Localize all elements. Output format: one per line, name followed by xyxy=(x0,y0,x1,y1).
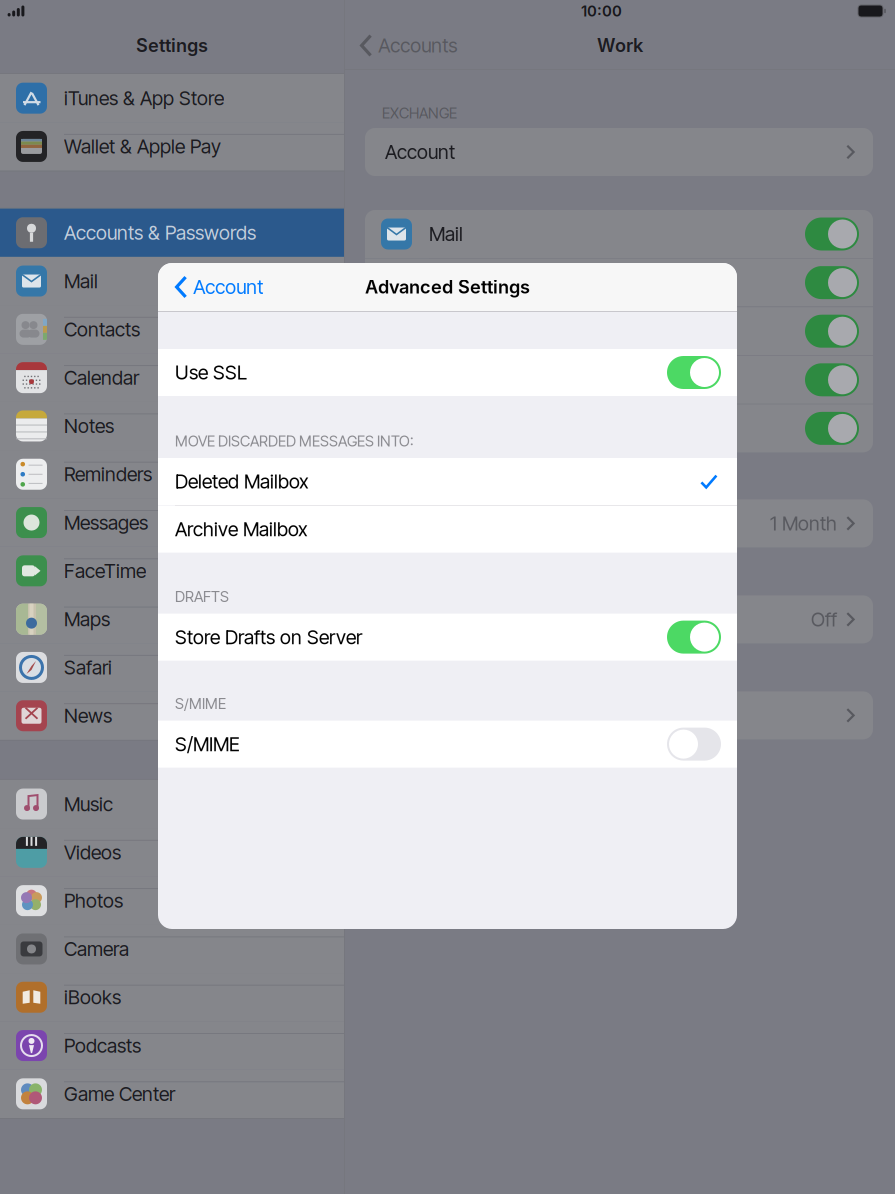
staticText: S/MIME xyxy=(175,695,226,713)
staticText: Videos xyxy=(64,841,121,864)
staticText: 1 Month xyxy=(770,512,837,535)
staticText: S/MIME xyxy=(175,732,240,756)
staticText: Notes xyxy=(64,414,114,438)
staticText: Contacts xyxy=(429,271,505,294)
button[interactable]: Deleted Mailbox xyxy=(158,458,737,505)
staticText: Maps xyxy=(64,607,110,631)
button[interactable]: Calendar xyxy=(0,353,344,402)
staticText: Settings xyxy=(136,34,208,56)
button[interactable]: Camera xyxy=(0,925,344,973)
button[interactable]: Wallet & Apple Pay xyxy=(0,122,344,171)
staticText: Off xyxy=(811,608,837,631)
staticText: iTunes & App Store xyxy=(64,86,224,110)
staticText: Calendar xyxy=(64,366,139,389)
staticText: Store Drafts on Server xyxy=(175,625,362,649)
staticText: Messages xyxy=(64,511,148,534)
staticText: Photos xyxy=(64,889,123,912)
button[interactable]: Messages xyxy=(0,498,344,547)
staticText: 10:00 xyxy=(581,2,622,20)
staticText: Camera xyxy=(64,937,129,961)
staticText: Use SSL xyxy=(175,361,247,384)
staticText: Game Center xyxy=(64,1082,175,1106)
button[interactable]: S/MIME xyxy=(158,721,737,768)
button[interactable]: Use SSL xyxy=(158,349,737,396)
staticText: Automatic Reply xyxy=(385,608,521,631)
button[interactable]: News xyxy=(0,692,344,740)
staticText: Reminders xyxy=(64,462,152,486)
button[interactable]: Store Drafts on Server xyxy=(158,614,737,661)
staticText: Advanced Settings xyxy=(365,276,530,298)
staticText: iBooks xyxy=(64,985,121,1009)
button[interactable]: FaceTime xyxy=(0,547,344,595)
button[interactable]: Contacts xyxy=(0,305,344,353)
button[interactable]: Archive Mailbox xyxy=(158,506,737,553)
button[interactable]: Photos xyxy=(0,876,344,925)
staticText: Accounts & Passwords xyxy=(64,221,256,245)
button[interactable]: Maps xyxy=(0,595,344,643)
button[interactable]: Mail xyxy=(0,257,344,305)
button[interactable]: Reminders xyxy=(0,450,344,498)
button[interactable]: Videos xyxy=(0,828,344,876)
staticText: Contacts xyxy=(64,318,140,341)
staticText: Wallet & Apple Pay xyxy=(64,135,221,158)
staticText: Deleted Mailbox xyxy=(175,470,309,493)
staticText: Advanced Settings xyxy=(385,704,544,727)
staticText: Podcasts xyxy=(64,1034,141,1057)
button[interactable]: iTunes & App Store xyxy=(0,74,344,122)
button[interactable]: Accounts xyxy=(345,22,457,69)
staticText: EXCHANGE xyxy=(382,104,457,122)
staticText: Mail xyxy=(429,222,463,246)
staticText: Music xyxy=(64,792,113,816)
button[interactable]: Music xyxy=(0,780,344,828)
staticText: DRAFTS xyxy=(175,588,229,606)
staticText: Accounts xyxy=(378,34,457,57)
staticText: News xyxy=(64,704,112,728)
staticText: Archive Mailbox xyxy=(175,517,308,541)
staticText: FaceTime xyxy=(64,559,146,583)
staticText: Safari xyxy=(64,656,112,679)
button[interactable]: Accounts & Passwords xyxy=(0,209,344,257)
staticText: Mail xyxy=(64,269,98,293)
staticText: MOVE DISCARDED MESSAGES INTO: xyxy=(175,432,414,450)
button[interactable]: Notes xyxy=(0,402,344,450)
staticText: Account xyxy=(385,140,455,164)
button[interactable]: Safari xyxy=(0,643,344,692)
button[interactable]: Podcasts xyxy=(0,1021,344,1070)
button[interactable]: iBooks xyxy=(0,973,344,1021)
button[interactable]: Game Center xyxy=(0,1070,344,1118)
staticText: Account xyxy=(193,275,263,299)
button[interactable]: Account xyxy=(158,263,263,311)
staticText: Work xyxy=(597,34,643,56)
